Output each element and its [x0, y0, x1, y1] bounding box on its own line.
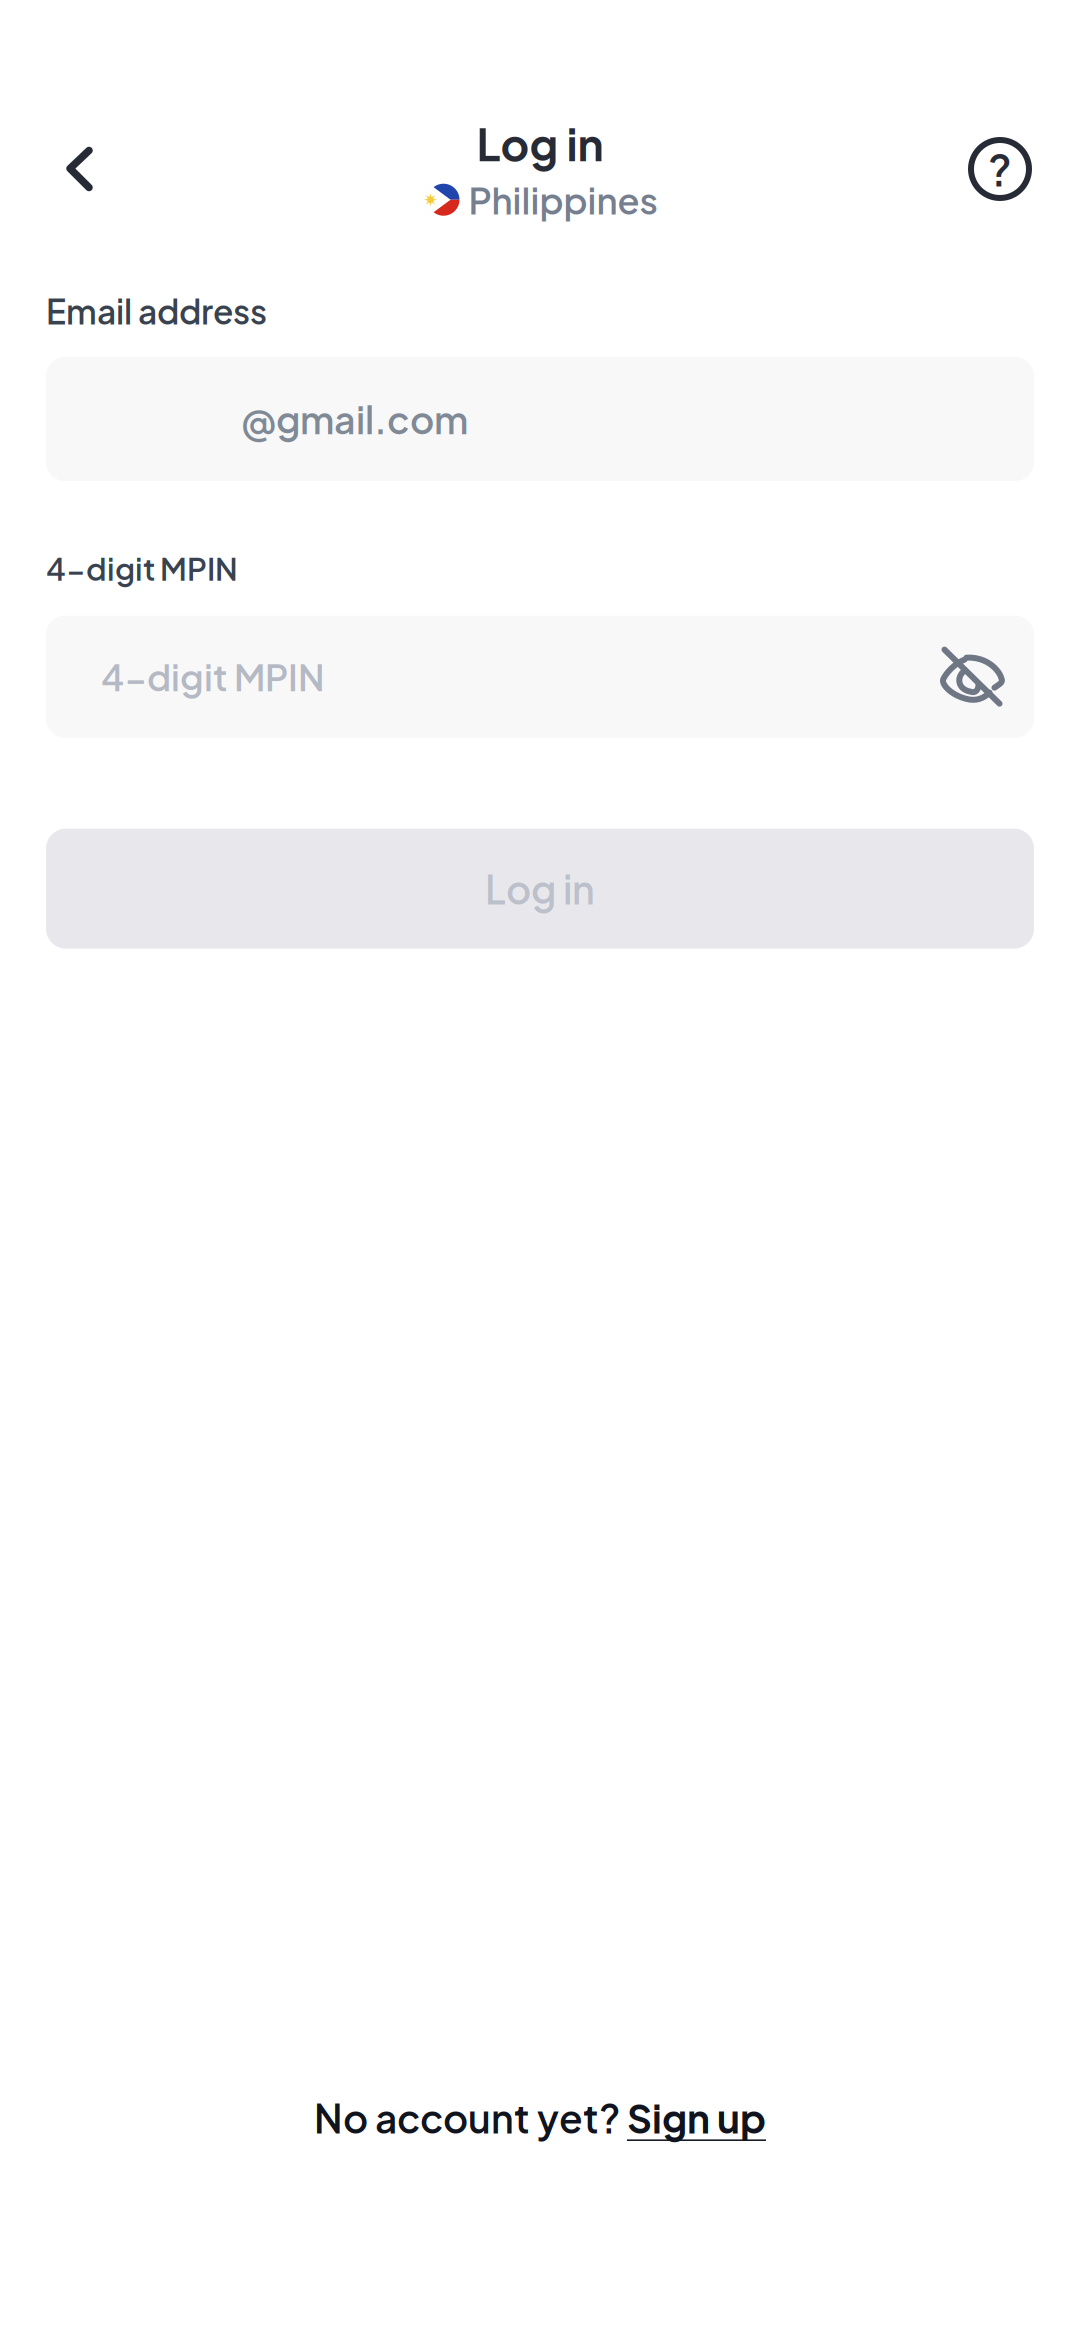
staticText: No account yet? [314, 2093, 627, 2142]
button[interactable]: No account yet? [294, 2081, 786, 2154]
staticText: Log in [476, 116, 603, 171]
staticText: Email address [46, 290, 267, 332]
staticText: Philippines [468, 177, 657, 222]
staticText: @gmail.com [241, 395, 468, 442]
button[interactable]: Back [24, 113, 136, 225]
staticText: 4-digit MPIN [46, 549, 238, 588]
button[interactable]: Show MPIN [928, 633, 1016, 721]
staticText: Sign up [627, 2093, 766, 2142]
button[interactable]: Help [944, 113, 1056, 225]
button[interactable]: Log in [46, 829, 1034, 949]
staticText: Log in [485, 864, 595, 913]
staticText: 4-digit MPIN [101, 654, 325, 699]
staticText: ? [988, 142, 1012, 196]
button[interactable]: 4-digit MPIN [46, 616, 1034, 738]
button[interactable]: Email address [46, 357, 1034, 481]
